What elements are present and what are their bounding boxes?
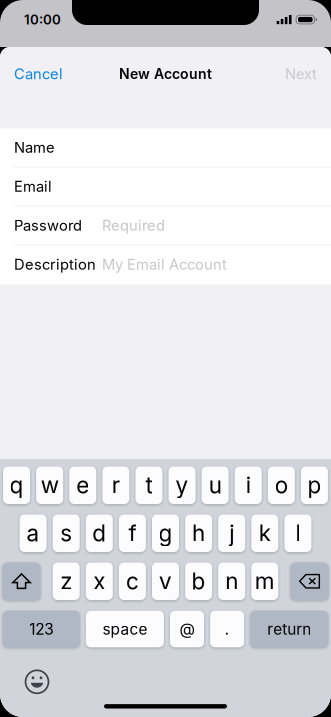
staticText: n bbox=[225, 567, 238, 595]
button[interactable]: Name bbox=[0, 128, 331, 167]
staticText: return bbox=[267, 620, 311, 638]
button[interactable]: . bbox=[210, 611, 244, 647]
button[interactable]: a bbox=[20, 514, 47, 552]
button[interactable]: @ bbox=[170, 611, 204, 647]
button[interactable]: j bbox=[218, 514, 245, 552]
staticText: k bbox=[259, 519, 271, 547]
button[interactable]: d bbox=[86, 514, 113, 552]
button[interactable]: s bbox=[53, 514, 80, 552]
staticText: Required bbox=[102, 217, 165, 234]
staticText: z bbox=[60, 567, 72, 595]
button[interactable]: Shift bbox=[2, 562, 40, 600]
staticText: . bbox=[225, 619, 230, 639]
staticText: Cancel bbox=[14, 65, 63, 83]
button[interactable]: x bbox=[86, 562, 113, 600]
button[interactable]: m bbox=[251, 562, 278, 600]
button[interactable]: p bbox=[301, 466, 328, 504]
staticText: q bbox=[10, 471, 24, 499]
staticText: u bbox=[209, 471, 222, 499]
button[interactable]: f bbox=[119, 514, 146, 552]
staticText: v bbox=[159, 567, 172, 595]
staticText: i bbox=[246, 471, 251, 499]
staticText: r bbox=[112, 471, 120, 499]
button[interactable]: Password bbox=[0, 206, 331, 245]
button[interactable]: y bbox=[169, 466, 196, 504]
button[interactable]: Delete bbox=[290, 562, 328, 600]
staticText: 123 bbox=[29, 620, 53, 638]
button[interactable]: Next bbox=[283, 57, 319, 91]
staticText: j bbox=[229, 519, 234, 547]
button[interactable]: u bbox=[202, 466, 229, 504]
staticText: m bbox=[255, 567, 275, 595]
button[interactable]: z bbox=[53, 562, 80, 600]
staticText: Name bbox=[14, 139, 55, 156]
button[interactable]: v bbox=[152, 562, 179, 600]
button[interactable]: t bbox=[135, 466, 162, 504]
button[interactable]: e bbox=[69, 466, 96, 504]
button[interactable]: n bbox=[218, 562, 245, 600]
staticText: Description bbox=[14, 256, 96, 273]
button[interactable]: space bbox=[86, 611, 164, 647]
staticText: x bbox=[93, 567, 105, 595]
staticText: w bbox=[41, 471, 59, 499]
staticText: a bbox=[27, 519, 40, 547]
button[interactable]: 123 bbox=[3, 611, 80, 647]
staticText: c bbox=[126, 567, 139, 595]
button[interactable]: Cancel bbox=[12, 57, 65, 91]
staticText: g bbox=[158, 519, 172, 547]
button[interactable]: q bbox=[3, 466, 30, 504]
staticText: @ bbox=[179, 619, 194, 639]
button[interactable]: w bbox=[36, 466, 63, 504]
button[interactable]: h bbox=[185, 514, 212, 552]
button[interactable]: l bbox=[284, 514, 311, 552]
staticText: f bbox=[128, 519, 136, 547]
staticText: o bbox=[275, 471, 288, 499]
button[interactable]: Emoji bbox=[25, 670, 48, 693]
button[interactable]: Description bbox=[0, 245, 331, 284]
staticText: My Email Account bbox=[102, 256, 227, 273]
button[interactable]: g bbox=[152, 514, 179, 552]
button[interactable]: i bbox=[235, 466, 262, 504]
staticText: 10:00 bbox=[24, 11, 61, 28]
button[interactable]: return bbox=[250, 611, 328, 647]
staticText: Next bbox=[285, 65, 317, 83]
staticText: space bbox=[102, 620, 147, 638]
staticText: t bbox=[145, 471, 152, 499]
button[interactable]: k bbox=[251, 514, 278, 552]
staticText: b bbox=[192, 567, 206, 595]
staticText: New Account bbox=[119, 65, 212, 82]
staticText: Email bbox=[14, 178, 52, 195]
staticText: s bbox=[60, 519, 72, 547]
staticText: l bbox=[295, 519, 300, 547]
button[interactable]: b bbox=[185, 562, 212, 600]
staticText: y bbox=[176, 471, 189, 499]
staticText: h bbox=[192, 519, 205, 547]
button[interactable]: r bbox=[102, 466, 129, 504]
button[interactable]: Email bbox=[0, 167, 331, 206]
staticText: Password bbox=[14, 217, 82, 234]
staticText: d bbox=[92, 519, 106, 547]
button[interactable]: o bbox=[268, 466, 295, 504]
staticText: p bbox=[307, 471, 321, 499]
staticText: e bbox=[76, 471, 89, 499]
button[interactable]: c bbox=[119, 562, 146, 600]
